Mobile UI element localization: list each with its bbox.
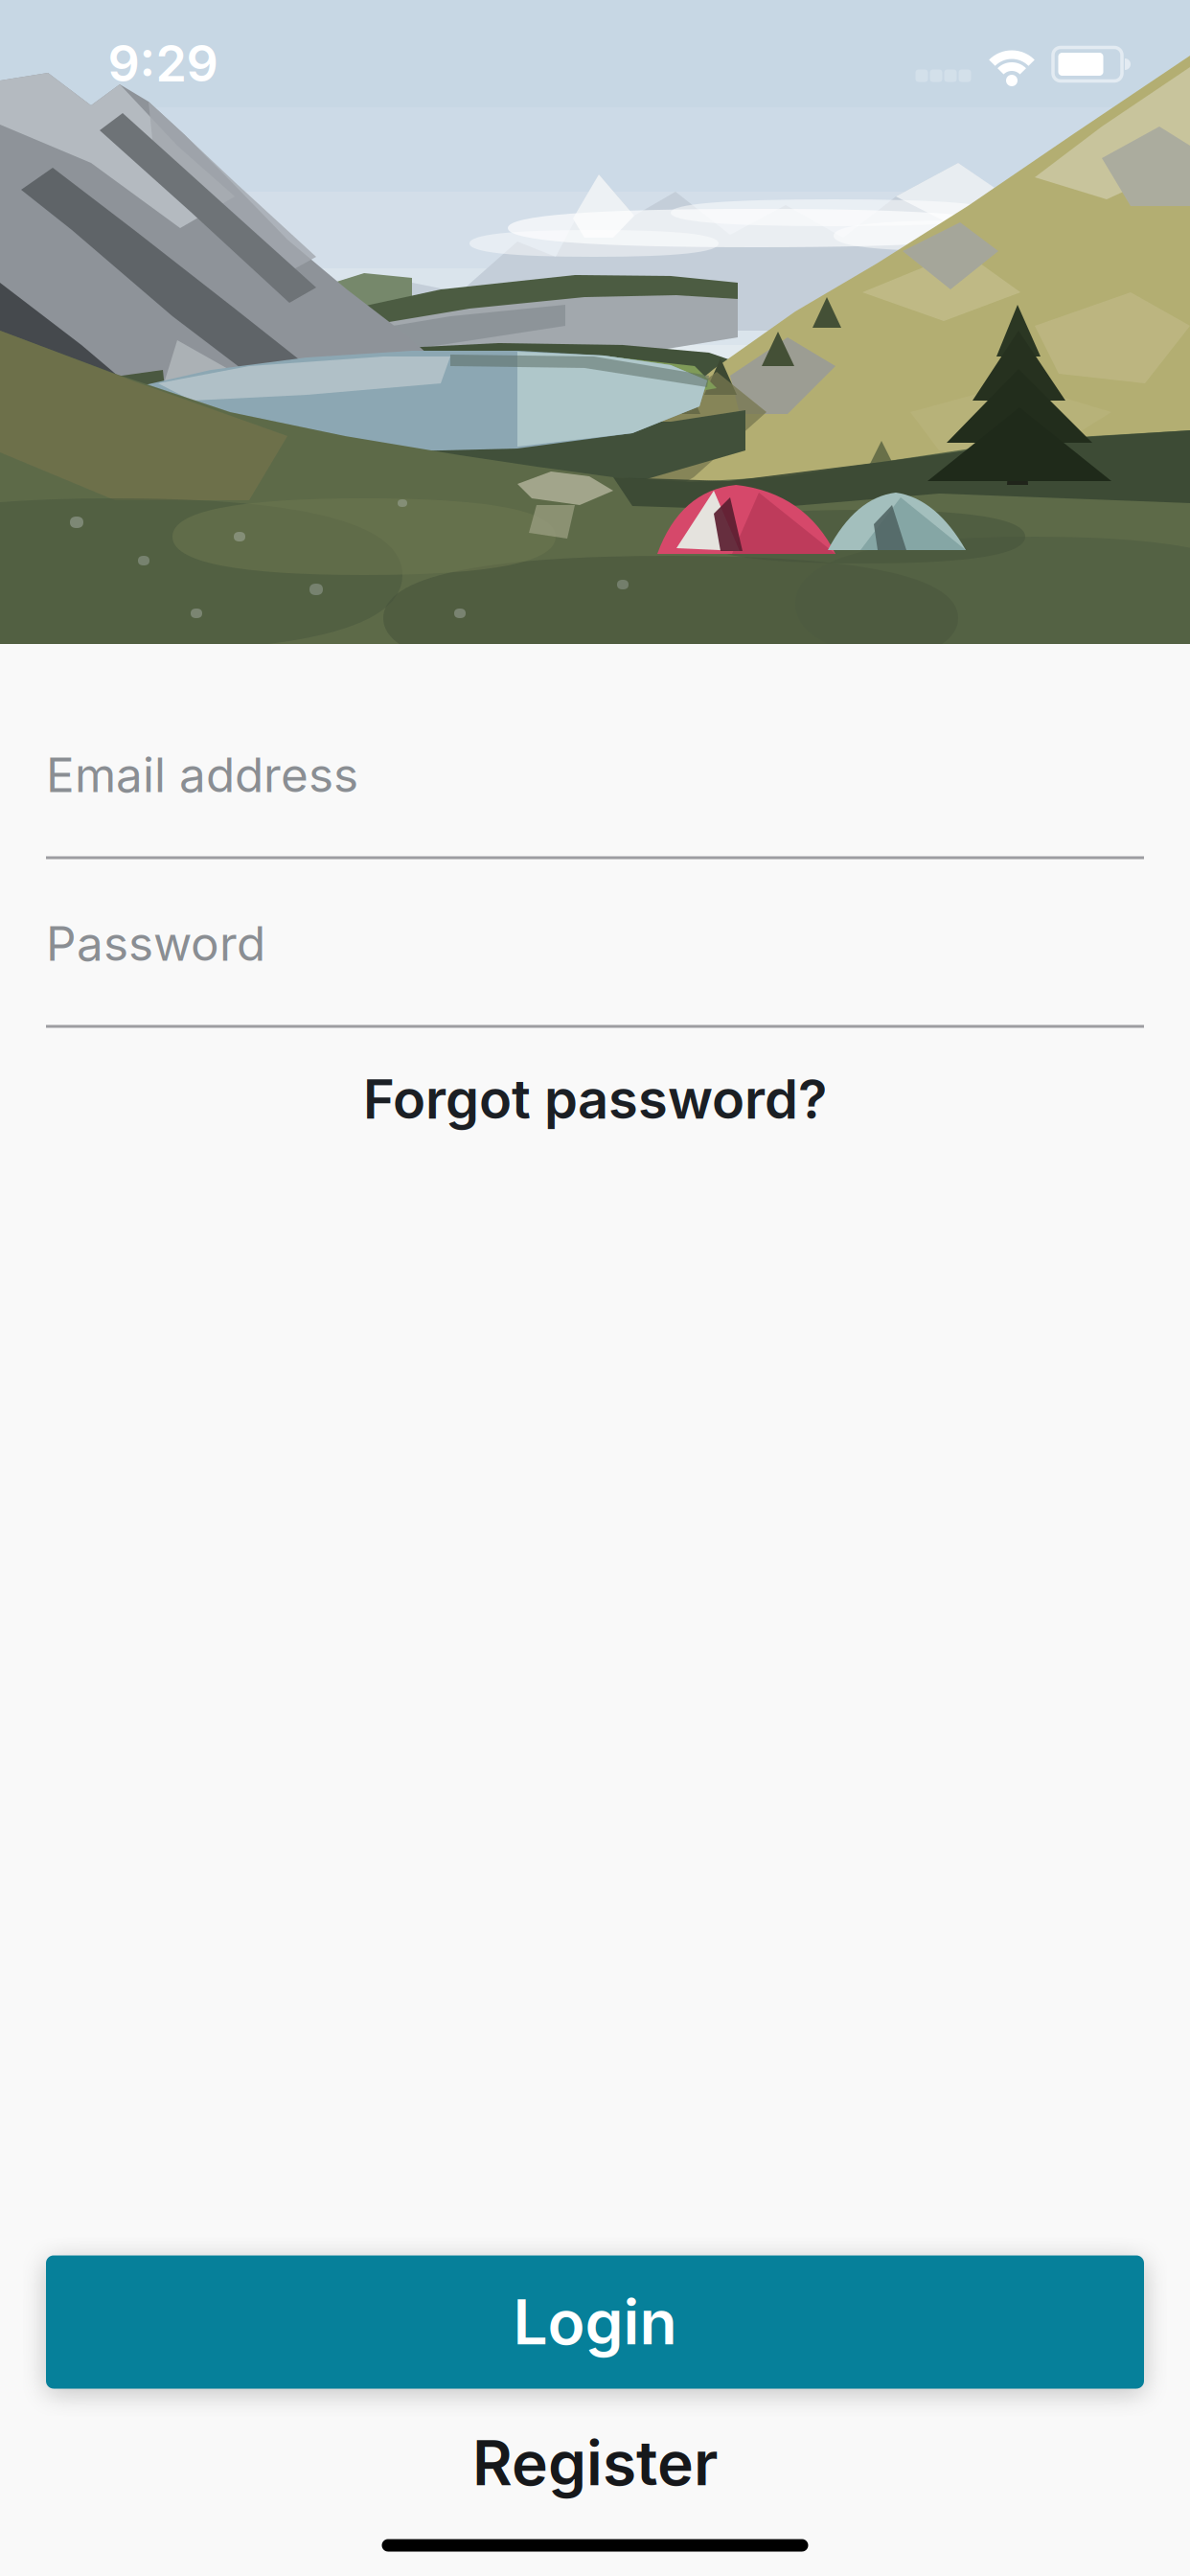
staticText: Email address xyxy=(46,747,358,803)
staticText: Login xyxy=(513,2286,677,2358)
button[interactable]: Register xyxy=(472,2427,718,2499)
button[interactable]: Login xyxy=(46,2255,1144,2389)
staticText: Password xyxy=(46,916,265,971)
staticText: Forgot password? xyxy=(363,1068,827,1131)
staticText: Register xyxy=(472,2427,718,2499)
button[interactable]: Password xyxy=(46,916,1144,1028)
button[interactable]: Forgot password? xyxy=(363,1068,827,1131)
button[interactable]: Email address xyxy=(46,747,1144,859)
staticText: 9:29 xyxy=(108,34,218,93)
